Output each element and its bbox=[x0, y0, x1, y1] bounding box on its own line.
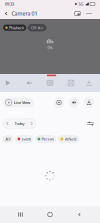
staticText: Live View bbox=[14, 100, 30, 105]
button[interactable]: Vehicle bbox=[58, 136, 79, 142]
button[interactable]: Download bbox=[81, 74, 97, 92]
button[interactable]: Camera 01 bbox=[2, 8, 42, 19]
button[interactable]: Audio bbox=[66, 94, 81, 110]
button[interactable]: Next day bbox=[27, 119, 36, 128]
button[interactable]: Playback bbox=[3, 24, 26, 31]
staticText: Camera 01 bbox=[12, 10, 38, 17]
button[interactable]: Play bbox=[0, 74, 16, 92]
button[interactable]: Event bbox=[15, 136, 33, 142]
button[interactable]: Record bbox=[51, 94, 66, 110]
button[interactable]: Picture in picture bbox=[72, 8, 83, 19]
button[interactable]: Save bbox=[63, 74, 79, 92]
button[interactable]: Layout bbox=[42, 74, 58, 92]
button[interactable]: Recents bbox=[11, 206, 29, 223]
staticText: Off Air bbox=[31, 25, 44, 30]
button[interactable]: Person bbox=[35, 136, 56, 142]
staticText: Vehicle bbox=[65, 136, 77, 142]
button[interactable]: Download bbox=[81, 94, 96, 110]
button[interactable]: All bbox=[3, 136, 13, 142]
button[interactable]: Mute bbox=[21, 74, 37, 92]
staticText: 5G bbox=[79, 1, 84, 7]
staticText: Playback bbox=[9, 25, 24, 30]
button[interactable]: Off Air bbox=[28, 24, 46, 31]
staticText: All bbox=[5, 136, 10, 142]
staticText: 0% bbox=[47, 45, 52, 50]
button[interactable]: Home bbox=[41, 206, 59, 223]
staticText: Person bbox=[42, 136, 54, 142]
button[interactable]: Back bbox=[70, 206, 88, 223]
staticText: Today bbox=[14, 121, 24, 126]
button[interactable]: Live View bbox=[3, 98, 34, 107]
button[interactable]: Today bbox=[12, 119, 27, 128]
button[interactable]: Filter bbox=[85, 118, 96, 129]
button[interactable]: More bbox=[83, 8, 95, 19]
staticText: 09:33 bbox=[5, 1, 14, 7]
button[interactable]: Previous day bbox=[3, 119, 12, 128]
staticText: Event bbox=[22, 136, 31, 142]
